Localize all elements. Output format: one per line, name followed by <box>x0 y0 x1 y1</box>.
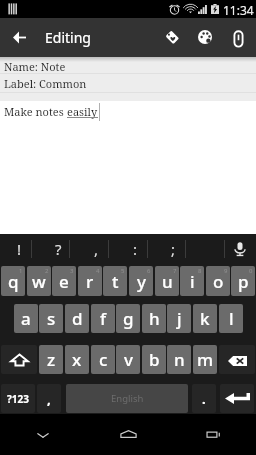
staticText: 2 <box>45 267 49 275</box>
button[interactable]: m <box>193 345 217 374</box>
staticText: d <box>72 307 83 330</box>
staticText: p <box>238 270 249 293</box>
button[interactable]: s <box>39 304 63 333</box>
staticText: r <box>86 270 94 293</box>
button[interactable]: q <box>1 266 25 296</box>
staticText: easily <box>67 104 98 119</box>
button[interactable]: n <box>167 345 191 374</box>
button[interactable]: ? <box>39 234 78 264</box>
button[interactable]: h <box>142 304 166 333</box>
button[interactable]: v <box>116 345 140 374</box>
staticText: 0 <box>249 267 253 275</box>
staticText: 4 <box>96 267 100 275</box>
staticText: Name: Note <box>4 59 66 74</box>
staticText: . <box>202 390 206 408</box>
button[interactable]: Backspace <box>219 345 255 374</box>
button[interactable]: , <box>77 234 116 264</box>
button[interactable]: Shift <box>1 345 37 374</box>
staticText: n <box>174 348 185 371</box>
staticText: : <box>133 239 138 259</box>
staticText: 6 <box>147 267 151 275</box>
staticText: i <box>190 270 195 293</box>
staticText: q <box>8 270 19 293</box>
button[interactable]: Home <box>86 414 171 455</box>
staticText: v <box>124 348 133 371</box>
staticText: 5 <box>121 267 125 275</box>
button[interactable]: d <box>65 304 89 333</box>
staticText: a <box>21 307 31 330</box>
staticText: 11:34 <box>223 2 254 18</box>
staticText: x <box>72 348 82 371</box>
button[interactable]: a <box>14 304 38 333</box>
button[interactable]: e <box>52 266 76 296</box>
staticText: 9 <box>224 267 228 275</box>
staticText: 1 <box>19 267 23 275</box>
button[interactable]: p <box>231 266 255 296</box>
staticText: , <box>47 390 51 408</box>
staticText: h <box>149 307 160 330</box>
button[interactable]: : <box>116 234 155 264</box>
staticText: m <box>197 348 214 371</box>
staticText: ! <box>17 239 22 259</box>
button[interactable]: Hide keyboard <box>0 414 86 455</box>
staticText: o <box>213 270 224 293</box>
staticText: English <box>111 392 144 405</box>
staticText: w <box>32 270 46 293</box>
button[interactable]: z <box>39 345 63 374</box>
staticText: 8 <box>198 267 202 275</box>
staticText: z <box>47 348 56 371</box>
staticText: s <box>47 307 56 330</box>
button[interactable]: Attach file <box>219 18 256 56</box>
button[interactable]: Colour <box>186 18 224 56</box>
staticText: g <box>123 307 134 330</box>
button[interactable]: b <box>142 345 166 374</box>
button[interactable]: i <box>180 266 204 296</box>
staticText: c <box>99 348 108 371</box>
button[interactable]: g <box>116 304 140 333</box>
staticText: t <box>112 270 119 293</box>
staticText: ?123 <box>7 392 29 406</box>
button[interactable]: x <box>65 345 89 374</box>
staticText: l <box>229 307 234 330</box>
staticText: b <box>149 348 160 371</box>
button[interactable]: l <box>219 304 243 333</box>
staticText: Make notes <box>4 104 67 119</box>
staticText: y <box>137 270 146 293</box>
button[interactable]: English <box>66 384 188 413</box>
button[interactable]: ! <box>0 234 39 264</box>
button[interactable]: Recent apps <box>171 414 256 455</box>
staticText: Label: Common <box>4 76 87 91</box>
button[interactable]: w <box>27 266 51 296</box>
staticText: , <box>94 239 99 259</box>
button[interactable]: c <box>91 345 115 374</box>
button[interactable]: f <box>91 304 115 333</box>
staticText: ; <box>171 239 176 259</box>
button[interactable]: r <box>78 266 102 296</box>
staticText: 3 <box>70 267 74 275</box>
button[interactable]: Enter <box>220 384 254 413</box>
button[interactable]: j <box>167 304 191 333</box>
button[interactable]: Voice input <box>224 234 256 264</box>
button[interactable]: , <box>37 384 61 413</box>
button[interactable]: ?123 <box>1 384 35 413</box>
staticText: f <box>100 307 107 330</box>
button[interactable]: y <box>129 266 153 296</box>
button[interactable]: Back <box>0 18 39 57</box>
button[interactable]: t <box>103 266 127 296</box>
button[interactable]: u <box>155 266 179 296</box>
staticText: ? <box>55 239 62 259</box>
button[interactable]: ; <box>154 234 193 264</box>
button[interactable]: k <box>193 304 217 333</box>
staticText: e <box>59 270 69 293</box>
button[interactable]: . <box>192 384 216 413</box>
button[interactable]: o <box>206 266 230 296</box>
button[interactable]: Label <box>153 18 191 56</box>
staticText: u <box>162 270 173 293</box>
staticText: k <box>200 307 210 330</box>
staticText: 7 <box>173 267 177 275</box>
staticText: j <box>177 307 182 330</box>
staticText: Editing <box>45 28 91 47</box>
